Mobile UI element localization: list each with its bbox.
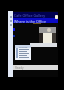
button[interactable]: Where is the Office (13, 18, 58, 23)
staticText: Cafe Office Gallery (14, 13, 46, 18)
button[interactable]: Ready (13, 65, 58, 70)
button[interactable]: Search (8, 19, 13, 23)
button[interactable] (15, 52, 31, 54)
button[interactable]: Library (8, 23, 13, 27)
button[interactable] (15, 48, 31, 50)
button[interactable] (15, 54, 31, 56)
staticText: Where is the Office (14, 19, 46, 24)
button[interactable] (15, 56, 31, 58)
button[interactable]: Account (55, 15, 58, 19)
button[interactable]: Cafe Office Gallery (13, 12, 58, 18)
staticText: Choose (19, 45, 28, 48)
staticText: Ready (15, 66, 24, 70)
button[interactable] (15, 50, 31, 52)
button[interactable]: Home (8, 15, 13, 19)
